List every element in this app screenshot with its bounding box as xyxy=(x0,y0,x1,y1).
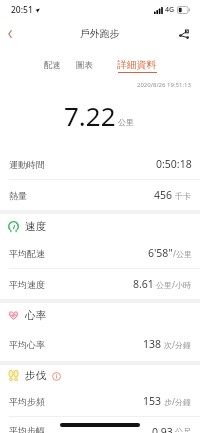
staticText: 詳細資料 xyxy=(117,59,157,71)
staticText: 步伐 xyxy=(25,369,46,382)
staticText: 6'58" xyxy=(148,246,173,260)
staticText: 戶外跑步 xyxy=(80,28,120,40)
staticText: 153 xyxy=(143,394,162,408)
staticText: 20:51 xyxy=(11,4,33,16)
staticText: 公里/小時 xyxy=(154,279,192,290)
staticText: 138 xyxy=(143,337,162,351)
staticText: 0:50:18 xyxy=(156,157,192,171)
staticText: 心率 xyxy=(25,309,46,322)
staticText: 千卡 xyxy=(173,190,192,201)
staticText: 公尺 xyxy=(173,425,192,432)
button[interactable]: 熱量 xyxy=(9,180,192,210)
staticText: /公里 xyxy=(173,248,192,259)
staticText: 7.22 xyxy=(64,98,116,133)
staticText: 平均配速 xyxy=(9,248,45,259)
staticText: 2020/8/26 19:51:13 xyxy=(137,81,191,89)
staticText: 熱量 xyxy=(9,190,27,201)
button[interactable]: 平均心率 xyxy=(9,327,192,361)
button[interactable]: 詳細資料 xyxy=(117,59,157,73)
button[interactable]: Share xyxy=(170,20,198,48)
staticText: 圖表 xyxy=(76,60,93,71)
staticText: 公里 xyxy=(118,117,134,127)
button[interactable]: 配速 xyxy=(44,59,61,71)
staticText: 配速 xyxy=(44,60,61,71)
button[interactable]: 平均配速 xyxy=(9,238,192,268)
button[interactable]: Back xyxy=(0,20,19,48)
button[interactable]: Info xyxy=(51,371,61,381)
staticText: 次/分鐘 xyxy=(162,339,192,350)
button[interactable]: 平均速度 xyxy=(9,269,192,299)
button[interactable]: 圖表 xyxy=(76,59,93,71)
staticText: 運動時間 xyxy=(9,159,45,170)
staticText: 8.61 xyxy=(133,277,154,291)
staticText: 0.93 xyxy=(152,425,173,433)
button[interactable]: 平均步頻 xyxy=(9,386,192,416)
staticText: 平均步幅 xyxy=(9,425,45,433)
staticText: 4G xyxy=(165,5,175,15)
button[interactable]: 運動時間 xyxy=(9,149,192,179)
staticText: 平均速度 xyxy=(9,279,45,290)
staticText: 步/分鐘 xyxy=(162,396,192,407)
staticText: 速度 xyxy=(25,220,46,233)
staticText: 平均步頻 xyxy=(9,396,45,407)
button[interactable]: 平均步幅 xyxy=(9,425,192,433)
staticText: 456 xyxy=(154,188,173,202)
staticText: 平均心率 xyxy=(9,339,45,350)
